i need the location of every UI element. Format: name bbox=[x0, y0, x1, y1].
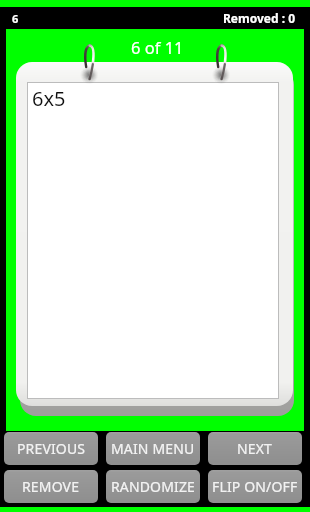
staticText: MAIN MENU bbox=[111, 439, 195, 458]
staticText: 6 bbox=[12, 11, 19, 26]
button[interactable]: NEXT bbox=[208, 432, 302, 465]
staticText: FLIP ON/OFF bbox=[212, 477, 298, 496]
button[interactable]: FLIP ON/OFF bbox=[208, 470, 302, 503]
staticText: 6x5 bbox=[32, 85, 66, 112]
staticText: Removed : 0 bbox=[223, 10, 296, 26]
staticText: NEXT bbox=[237, 439, 273, 458]
staticText: 6 of 11 bbox=[131, 36, 184, 58]
button[interactable]: RANDOMIZE bbox=[106, 470, 200, 503]
button[interactable]: REMOVE bbox=[4, 470, 98, 503]
button[interactable]: Flash card, tap to flip bbox=[16, 62, 296, 416]
button[interactable]: MAIN MENU bbox=[106, 432, 200, 465]
staticText: RANDOMIZE bbox=[111, 477, 196, 496]
staticText: REMOVE bbox=[22, 477, 80, 496]
staticText: PREVIOUS bbox=[17, 439, 86, 458]
button[interactable]: PREVIOUS bbox=[4, 432, 98, 465]
